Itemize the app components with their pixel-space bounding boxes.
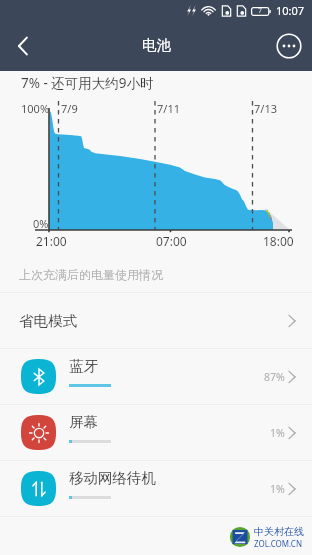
staticText: 7 — [258, 6, 263, 16]
staticText: 蓝牙 — [69, 357, 98, 375]
button[interactable]: 省电模式 — [0, 293, 312, 348]
button[interactable]: Back — [0, 21, 46, 71]
staticText: 7/11 — [157, 101, 180, 116]
staticText: 87% — [264, 370, 285, 384]
staticText: 屏幕 — [69, 413, 98, 431]
staticText: 上次充满后的电量使用情况 — [19, 267, 163, 282]
staticText: 省电模式 — [19, 312, 77, 330]
staticText: 1% — [270, 426, 285, 440]
staticText: 1% — [270, 482, 285, 496]
staticText: 7/13 — [254, 101, 277, 116]
staticText: 10:07 — [276, 3, 305, 18]
button[interactable]: 屏幕 — [0, 405, 312, 460]
staticText: 7/9 — [61, 101, 78, 116]
staticText: 移动网络待机 — [69, 469, 156, 487]
staticText: 21:00 — [36, 233, 67, 249]
staticText: 18:00 — [263, 233, 294, 249]
staticText: 0% — [33, 216, 49, 231]
staticText: 100% — [21, 101, 50, 116]
button[interactable]: 移动网络待机 — [0, 461, 312, 516]
staticText: 电池 — [142, 36, 171, 54]
staticText: ZOL.COM.CN — [254, 538, 302, 549]
button[interactable]: 蓝牙 — [0, 349, 312, 404]
staticText: 07:00 — [156, 233, 187, 249]
staticText: 7% - 还可用大约9小时 — [21, 74, 154, 92]
button[interactable]: More options — [266, 21, 312, 71]
staticText: 中关村在线 — [254, 525, 304, 538]
